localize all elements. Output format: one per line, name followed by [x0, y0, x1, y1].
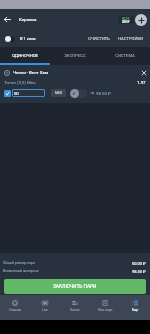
staticText: Тотал (3,5) Мен — [4, 80, 36, 85]
staticText: Еще — [132, 308, 139, 312]
staticText: 50 — [14, 91, 19, 96]
button[interactable]: 50 — [12, 89, 45, 97]
button[interactable]: СИСТЕМА — [100, 47, 150, 63]
staticText: 1.97 — [137, 80, 146, 85]
staticText: Челси - Вест Хэм — [13, 70, 49, 75]
button[interactable]: Live — [30, 295, 60, 320]
staticText: НАСТРОЙКИ — [118, 36, 144, 41]
staticText: ЭКСПРЕСС — [64, 53, 86, 58]
button[interactable]: ОДИНОЧНОЕ — [0, 47, 50, 63]
button[interactable]: Deposit — [135, 14, 147, 26]
button[interactable]: ОЧИСТИТЬ — [87, 33, 111, 44]
staticText: В 1 клик — [20, 36, 36, 41]
button[interactable]: НАСТРОЙКИ — [117, 33, 145, 44]
button[interactable]: ЭКСПРЕСС — [50, 47, 100, 63]
staticText: ЗАКЛЮЧИТЬ ПАРИ — [53, 284, 97, 290]
staticText: Возможный выигрыш — [3, 269, 39, 273]
button[interactable]: Мои пари — [90, 295, 120, 320]
staticText: Линия — [70, 308, 80, 312]
button[interactable]: Еще — [120, 295, 150, 320]
button[interactable]: Главная — [0, 295, 30, 320]
button[interactable]: One click bet toggle — [5, 36, 15, 42]
staticText: Главная — [9, 308, 22, 312]
staticText: MAX — [55, 91, 62, 95]
staticText: ОДИНОЧНОЕ — [12, 53, 38, 58]
staticText: 962 ₽ — [122, 17, 130, 20]
button[interactable]: MAX — [51, 89, 66, 97]
staticText: Общий размер пари — [3, 261, 35, 265]
staticText: ОЧИСТИТЬ — [88, 36, 110, 41]
button[interactable]: Линия — [60, 295, 90, 320]
button[interactable]: Currency mode — [70, 89, 87, 98]
staticText: СИСТЕМА — [115, 53, 135, 58]
staticText: 98.50 ₽ — [132, 269, 146, 274]
button[interactable]: ЗАКЛЮЧИТЬ ПАРИ — [4, 279, 146, 294]
staticText: Корзина — [19, 17, 37, 22]
staticText: ₽ — [73, 92, 76, 96]
staticText: 98.50 ₽ — [96, 91, 112, 96]
button[interactable]: Back — [0, 9, 15, 30]
staticText: Мои пари — [98, 308, 113, 312]
button[interactable]: 962 ₽ — [118, 16, 134, 24]
staticText: Live — [42, 308, 48, 312]
staticText: 50.00 ₽ — [132, 261, 146, 266]
button[interactable]: Include bet — [4, 90, 11, 97]
button[interactable]: Remove bet — [140, 69, 148, 77]
staticText: 250 ₽ — [122, 20, 130, 23]
